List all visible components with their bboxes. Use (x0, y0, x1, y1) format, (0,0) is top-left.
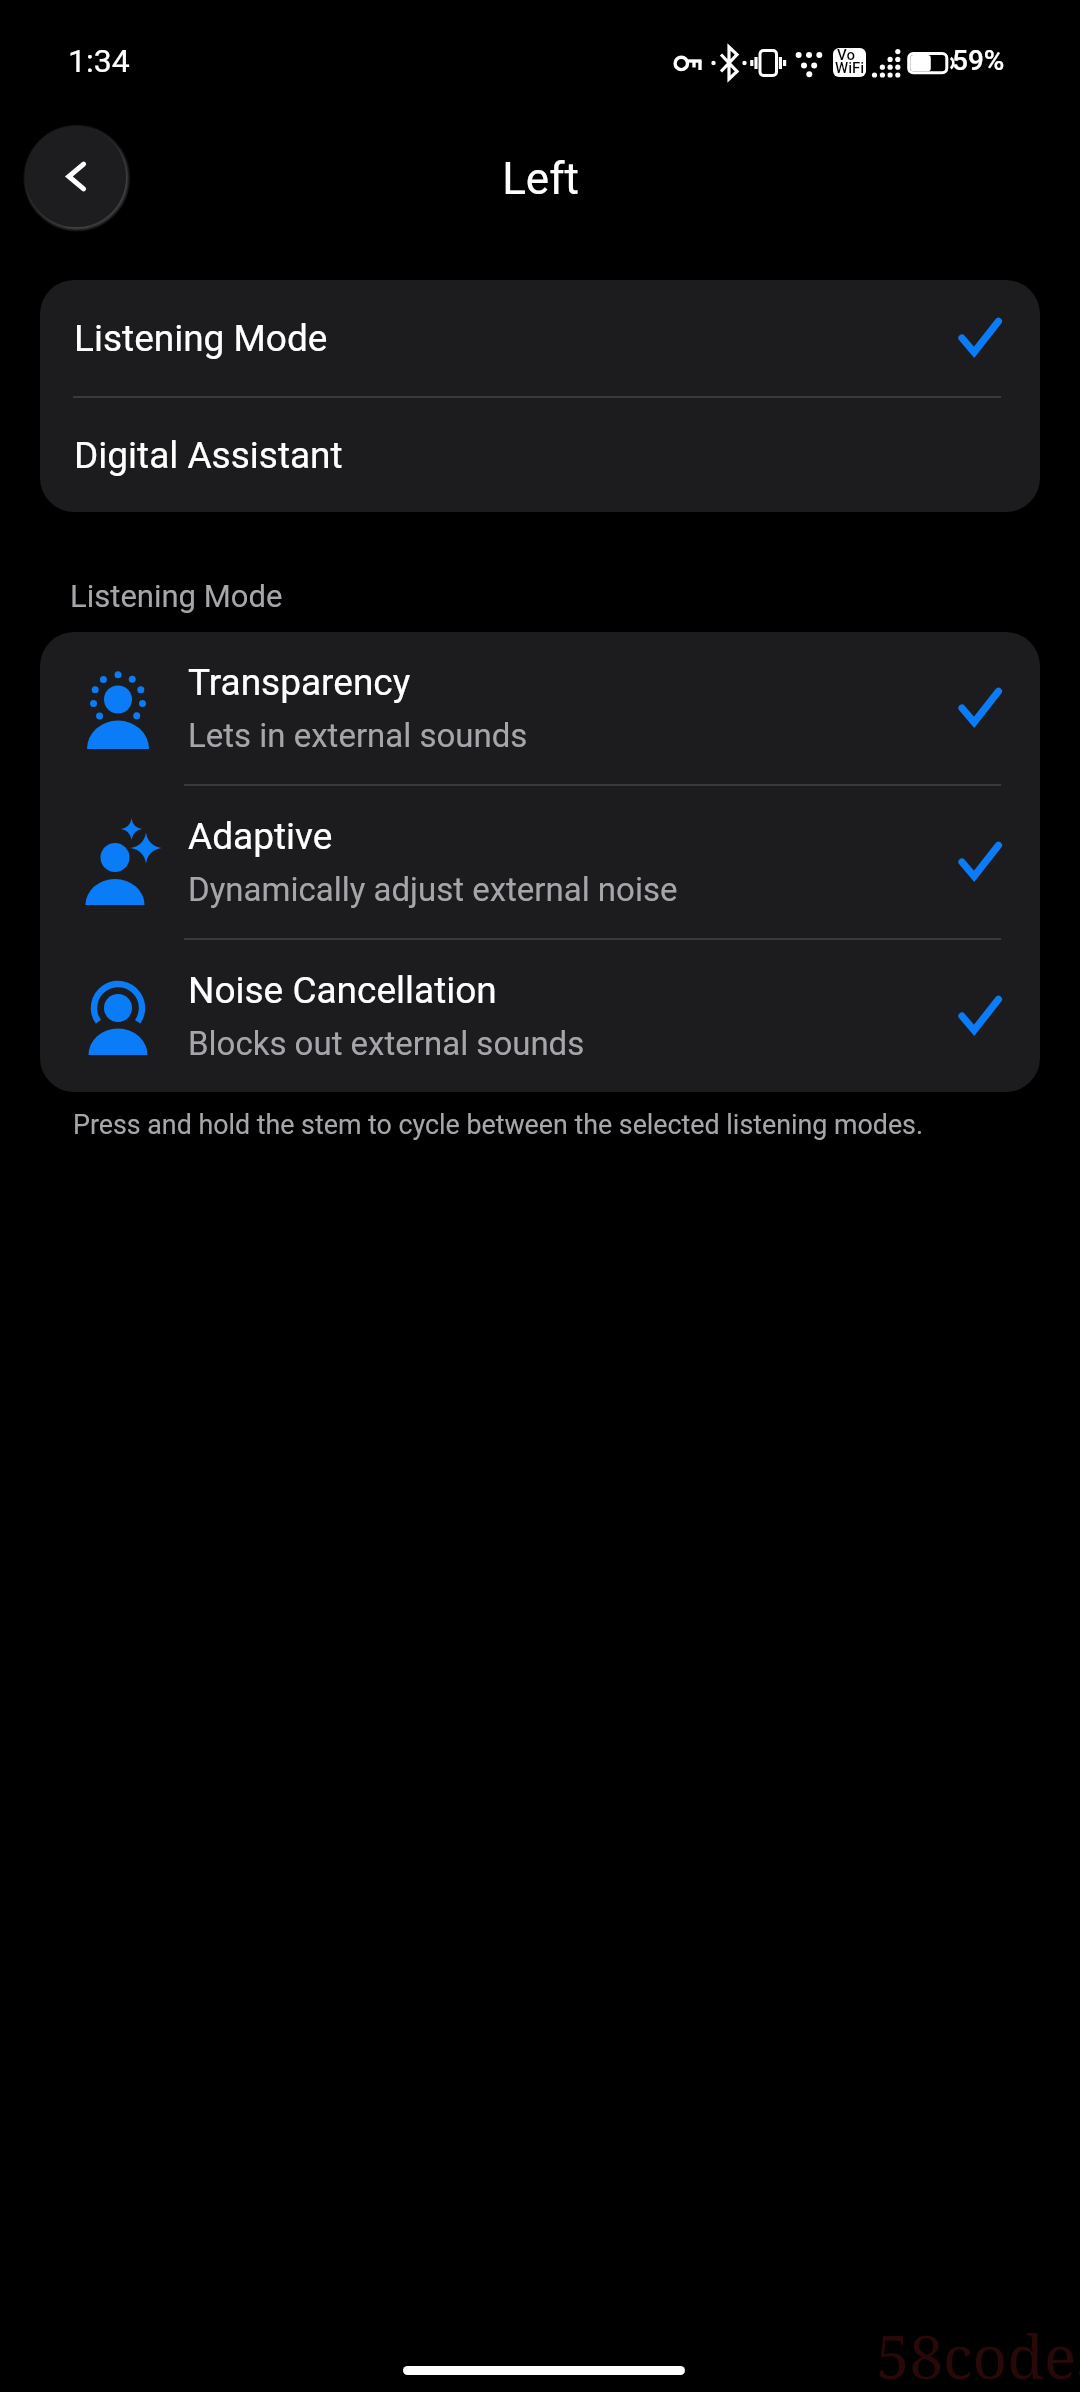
button[interactable]: Transparency (40, 632, 1040, 784)
other: Status icons (660, 40, 960, 88)
button[interactable]: Noise Cancellation (40, 940, 1040, 1092)
staticText: 59% (952, 44, 1005, 77)
staticText: Transparency (188, 661, 411, 704)
staticText: Press and hold the stem to cycle between… (73, 1109, 1063, 1140)
staticText: Listening Mode (70, 578, 283, 614)
staticText: Listening Mode (74, 317, 328, 360)
staticText: 1:34 (68, 42, 130, 80)
button[interactable]: Listening Mode (40, 280, 1040, 396)
staticText: Blocks out external sounds (188, 1024, 585, 1063)
button[interactable]: Back (25, 126, 126, 227)
staticText: 58codes (876, 2315, 1080, 2392)
staticText: Vo (837, 48, 855, 64)
staticText: Adaptive (188, 815, 333, 858)
staticText: Lets in external sounds (188, 716, 528, 755)
staticText: Digital Assistant (74, 434, 343, 477)
button[interactable]: Adaptive (40, 786, 1040, 938)
staticText: WiFi (835, 59, 865, 77)
staticText: Dynamically adjust external noise (188, 870, 678, 909)
button[interactable]: Digital Assistant (40, 398, 1040, 512)
staticText: Left (502, 153, 579, 205)
staticText: Noise Cancellation (188, 969, 497, 1012)
